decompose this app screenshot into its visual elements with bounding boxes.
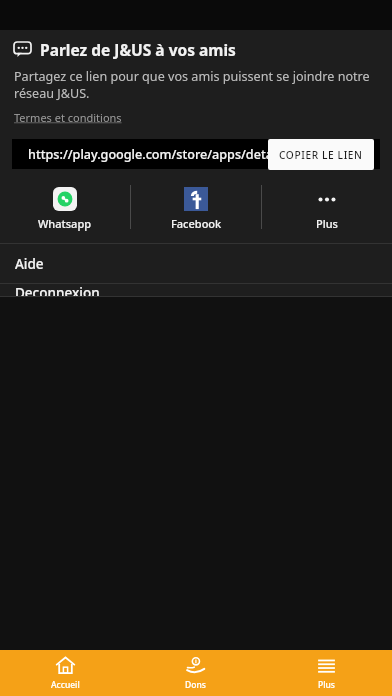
button[interactable]: Termes et conditions [14,110,122,125]
staticText: Plus [316,216,338,231]
staticText: Plus [318,679,335,691]
other: Chat [14,42,31,57]
staticText: COPIER LE LIEN [279,148,363,162]
staticText: Termes et conditions [14,110,122,125]
button[interactable]: Accueil [0,650,130,696]
button[interactable]: Dons [130,650,261,696]
staticText: Partagez ce lien pour que vos amis puiss… [14,68,372,102]
staticText: Accueil [51,679,80,691]
other: Plus d'options [315,187,339,211]
other: Whatsapp [53,187,77,211]
button[interactable]: Whatsapp [0,181,130,237]
button[interactable]: Aide [0,244,392,283]
button[interactable]: Plus d'options [262,181,392,237]
button[interactable]: https://play.google.com/store/apps/detai… [12,139,380,169]
button[interactable]: Facebook [131,181,261,237]
staticText: Aide [15,255,44,273]
button[interactable]: COPIER LE LIEN [268,139,374,170]
staticText: Dons [185,679,206,691]
staticText: https://play.google.com/store/apps/detai… [28,146,286,163]
button[interactable]: Deconnexion [0,284,392,296]
other: Facebook [184,187,208,211]
button[interactable]: Plus [261,650,392,696]
staticText: Parlez de J&US à vos amis [40,39,236,60]
staticText: Whatsapp [38,216,92,231]
staticText: Facebook [171,216,222,231]
staticText: Deconnexion [15,284,100,296]
